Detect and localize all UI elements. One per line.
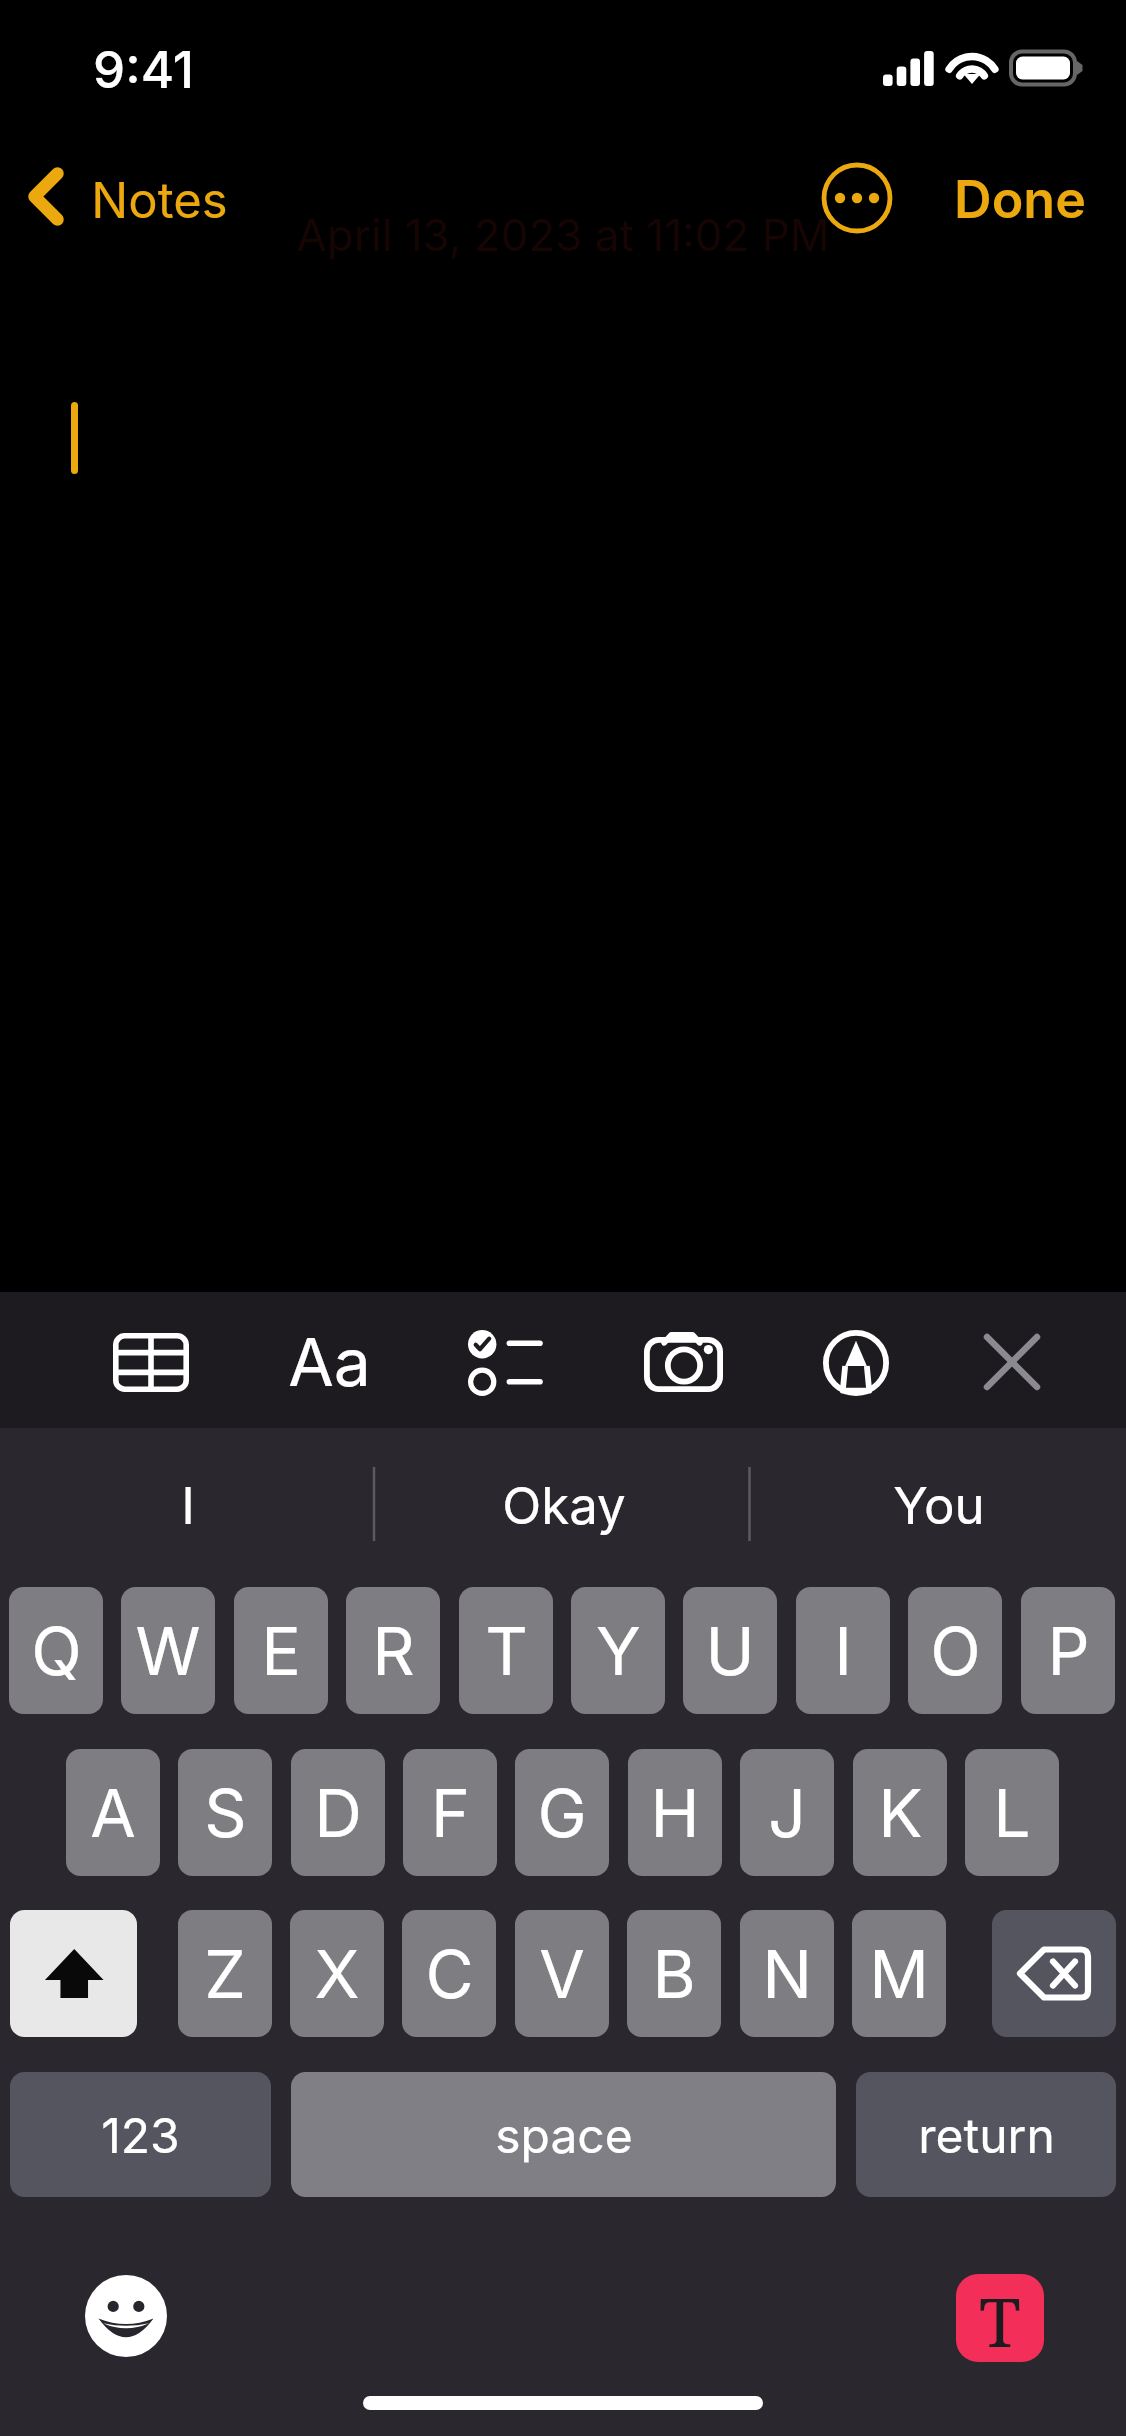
staticText: U	[705, 1611, 755, 1691]
button[interactable]: I	[0, 1428, 376, 1583]
button[interactable]: Dictation	[956, 2274, 1044, 2362]
button[interactable]: space	[291, 2072, 836, 2197]
staticText: Aa	[288, 1322, 371, 1402]
staticText: Z	[204, 1934, 246, 2014]
staticText: Notes	[91, 171, 228, 230]
button[interactable]: M	[852, 1910, 946, 2037]
staticText: O	[930, 1611, 981, 1691]
button[interactable]: E	[234, 1587, 328, 1714]
staticText: You	[893, 1475, 985, 1537]
button[interactable]: Okay	[376, 1428, 751, 1583]
staticText: E	[261, 1611, 301, 1691]
button[interactable]: I	[796, 1587, 890, 1714]
staticText: L	[993, 1773, 1031, 1853]
button[interactable]: More options	[808, 149, 906, 247]
staticText: P	[1047, 1611, 1090, 1691]
staticText: W	[135, 1611, 201, 1691]
staticText: D	[314, 1773, 362, 1853]
staticText: T	[485, 1611, 528, 1691]
staticText: F	[431, 1773, 470, 1853]
button[interactable]: Backspace	[992, 1910, 1116, 2037]
button[interactable]: G	[515, 1749, 609, 1876]
staticText: Okay	[502, 1475, 626, 1537]
staticText: X	[314, 1934, 360, 2014]
staticText: Q	[31, 1611, 82, 1691]
staticText: I	[834, 1611, 852, 1691]
button[interactable]: S	[178, 1749, 272, 1876]
button[interactable]: N	[740, 1910, 834, 2037]
button[interactable]: Q	[9, 1587, 103, 1714]
button[interactable]: 123	[10, 2072, 271, 2197]
staticText: return	[918, 2106, 1055, 2164]
staticText: N	[762, 1934, 812, 2014]
staticText: B	[652, 1934, 696, 2014]
button[interactable]: F	[403, 1749, 497, 1876]
staticText: 123	[101, 2106, 180, 2164]
button[interactable]: P	[1021, 1587, 1115, 1714]
staticText: R	[372, 1611, 415, 1691]
staticText: space	[495, 2106, 633, 2164]
button[interactable]: Table	[87, 1307, 215, 1418]
button[interactable]: Camera	[618, 1305, 749, 1418]
button[interactable]: You	[751, 1428, 1126, 1583]
button[interactable]: Emoji	[85, 2275, 167, 2357]
button[interactable]: L	[965, 1749, 1059, 1876]
staticText: Done	[954, 168, 1086, 231]
staticText: G	[537, 1773, 587, 1853]
button[interactable]: U	[683, 1587, 777, 1714]
button[interactable]: Done	[936, 152, 1104, 247]
staticText: Y	[596, 1611, 641, 1691]
button[interactable]: Close keyboard	[961, 1311, 1063, 1413]
button[interactable]: V	[515, 1910, 609, 2037]
staticText: April 13, 2023 at 11:02 PM	[296, 208, 830, 261]
button[interactable]: W	[121, 1587, 215, 1714]
staticText: H	[650, 1773, 700, 1853]
button[interactable]: K	[853, 1749, 947, 1876]
staticText: T	[979, 2274, 1021, 2362]
button[interactable]: X	[290, 1910, 384, 2037]
button[interactable]: return	[856, 2072, 1116, 2197]
button[interactable]: C	[402, 1910, 496, 2037]
staticText: I	[181, 1475, 195, 1537]
staticText: K	[878, 1773, 923, 1853]
button[interactable]: R	[346, 1587, 440, 1714]
button[interactable]: A	[66, 1749, 160, 1876]
staticText: M	[869, 1934, 929, 2014]
button[interactable]: B	[627, 1910, 721, 2037]
button[interactable]: T	[459, 1587, 553, 1714]
button[interactable]: D	[291, 1749, 385, 1876]
staticText: V	[539, 1934, 585, 2014]
staticText: C	[425, 1934, 474, 2014]
staticText: S	[204, 1773, 247, 1853]
staticText: A	[90, 1773, 136, 1853]
button[interactable]: Y	[571, 1587, 665, 1714]
button[interactable]: H	[628, 1749, 722, 1876]
staticText: 9:41	[93, 39, 194, 101]
button[interactable]: Text format	[265, 1308, 393, 1416]
button[interactable]: O	[908, 1587, 1002, 1714]
staticText: J	[768, 1773, 806, 1853]
button[interactable]: Notes	[8, 150, 248, 250]
button[interactable]: Checklist	[442, 1304, 568, 1422]
button[interactable]: Z	[178, 1910, 272, 2037]
button[interactable]: J	[740, 1749, 834, 1876]
button[interactable]: Markup	[796, 1304, 916, 1422]
button[interactable]: Shift	[10, 1910, 137, 2037]
